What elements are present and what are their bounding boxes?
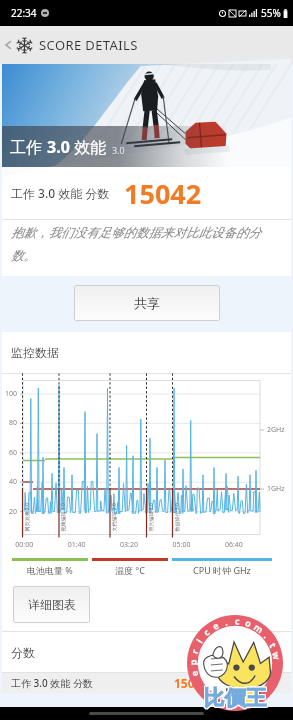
button[interactable]: 详细图表 — [13, 586, 90, 623]
staticText: 监控数据 — [11, 345, 59, 360]
button[interactable]: 共享 — [74, 285, 220, 321]
staticText: 15042 — [174, 675, 209, 691]
staticText: 22:34 — [11, 6, 37, 20]
staticText: 效能 — [70, 136, 107, 158]
button[interactable]: Back — [0, 37, 16, 53]
button[interactable]: 工作 3.0 效能 分数 — [2, 673, 291, 693]
staticText: 温度 °C — [115, 564, 145, 576]
staticText: 工作 3.0 效能 分数 — [11, 185, 110, 201]
staticText: 工作 3.0 效能 分数 — [11, 676, 93, 690]
staticText: 3.0 — [47, 136, 70, 158]
staticText: 工作 — [10, 136, 47, 158]
staticText: 详细图表 — [28, 597, 76, 612]
staticText: 55% — [261, 6, 281, 20]
staticText: CPU 时钟 GHz — [193, 564, 251, 576]
staticText: 3.0 — [112, 144, 125, 156]
staticText: 共享 — [134, 295, 160, 311]
staticText: 15042 — [124, 175, 202, 212]
staticText: 抱歉，我们没有足够的数据来对比此设备的分数。 — [11, 225, 281, 264]
staticText: 分数 — [11, 645, 35, 660]
staticText: SCORE DETAILS — [39, 36, 138, 54]
staticText: 电池电量 % — [27, 564, 73, 576]
